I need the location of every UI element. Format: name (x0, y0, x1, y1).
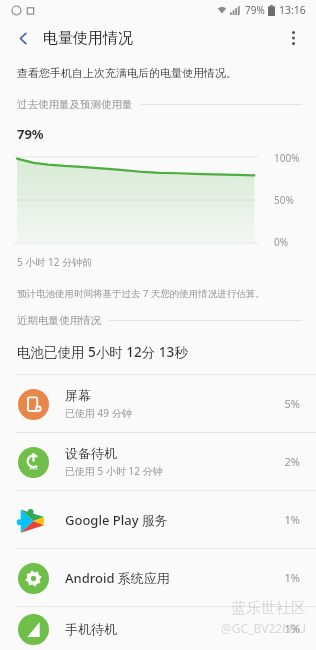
button[interactable]: Back (8, 23, 38, 53)
staticText: 设备待机 (65, 445, 117, 461)
staticText: 0% (274, 235, 289, 249)
button[interactable]: Android 系统应用 (0, 549, 316, 606)
staticText: 过去使用量及预测使用量 (17, 98, 133, 111)
staticText: 50% (274, 193, 294, 207)
staticText: 5% (284, 396, 300, 411)
staticText: Google Play 服务 (65, 511, 168, 529)
staticText: 蓝乐世社区 (231, 599, 306, 618)
staticText: 1% (284, 621, 300, 636)
staticText: 79% (245, 3, 265, 17)
staticText: 2% (284, 454, 300, 469)
staticText: 手机待机 (65, 621, 117, 637)
staticText: 13:16 (279, 3, 306, 17)
staticText: 电池已使用 5小时 12分 13秒 (17, 343, 188, 361)
staticText: Android 系统应用 (65, 569, 170, 587)
staticText: 查看您手机自上次充满电后的电量使用情况。 (17, 66, 237, 80)
staticText: 屏幕 (65, 387, 91, 403)
staticText: 1% (284, 570, 300, 585)
staticText: 已使用 49 分钟 (65, 406, 132, 420)
button[interactable]: More options (278, 23, 308, 53)
button[interactable]: 屏幕 (0, 375, 316, 432)
staticText: 5 小时 12 分钟前 (17, 255, 92, 269)
staticText: 近期电量使用情况 (17, 314, 101, 327)
staticText: 100% (274, 151, 300, 165)
staticText: 1% (284, 512, 300, 527)
button[interactable]: Google Play 服务 (0, 491, 316, 548)
staticText: 电量使用情况 (43, 29, 133, 48)
button[interactable]: 手机待机 (0, 607, 316, 650)
button[interactable]: 设备待机 (0, 433, 316, 490)
staticText: 79% (17, 125, 44, 143)
staticText: 已使用 5 小时 12 分钟 (65, 464, 163, 478)
staticText: @GC_BV22LDU (221, 620, 306, 636)
staticText: 预计电池使用时间将基于过去 7 天您的使用情况进行估算。 (17, 287, 265, 300)
